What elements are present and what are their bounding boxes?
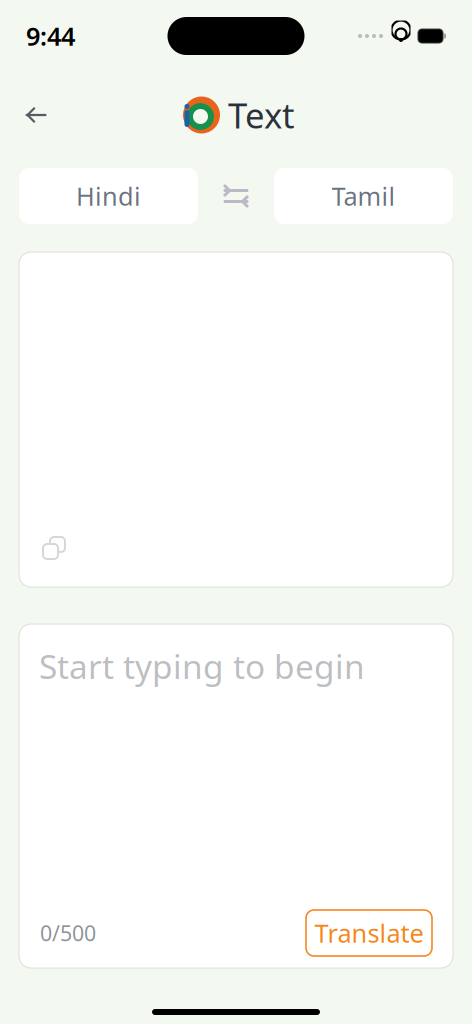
staticText: Translate: [314, 916, 423, 950]
button[interactable]: Copy translation: [37, 531, 71, 565]
staticText: Text: [228, 92, 295, 138]
staticText: Hindi: [76, 179, 141, 213]
staticText: 0/500: [40, 919, 96, 947]
button[interactable]: Swap languages: [198, 168, 274, 224]
button[interactable]: Hindi: [19, 168, 198, 224]
button[interactable]: Back: [14, 93, 58, 137]
staticText: Start typing to begin: [39, 644, 365, 688]
staticText: 9:44: [26, 19, 75, 53]
staticText: Tamil: [331, 179, 395, 213]
button[interactable]: Tamil: [274, 168, 453, 224]
button[interactable]: Translate: [306, 910, 432, 956]
